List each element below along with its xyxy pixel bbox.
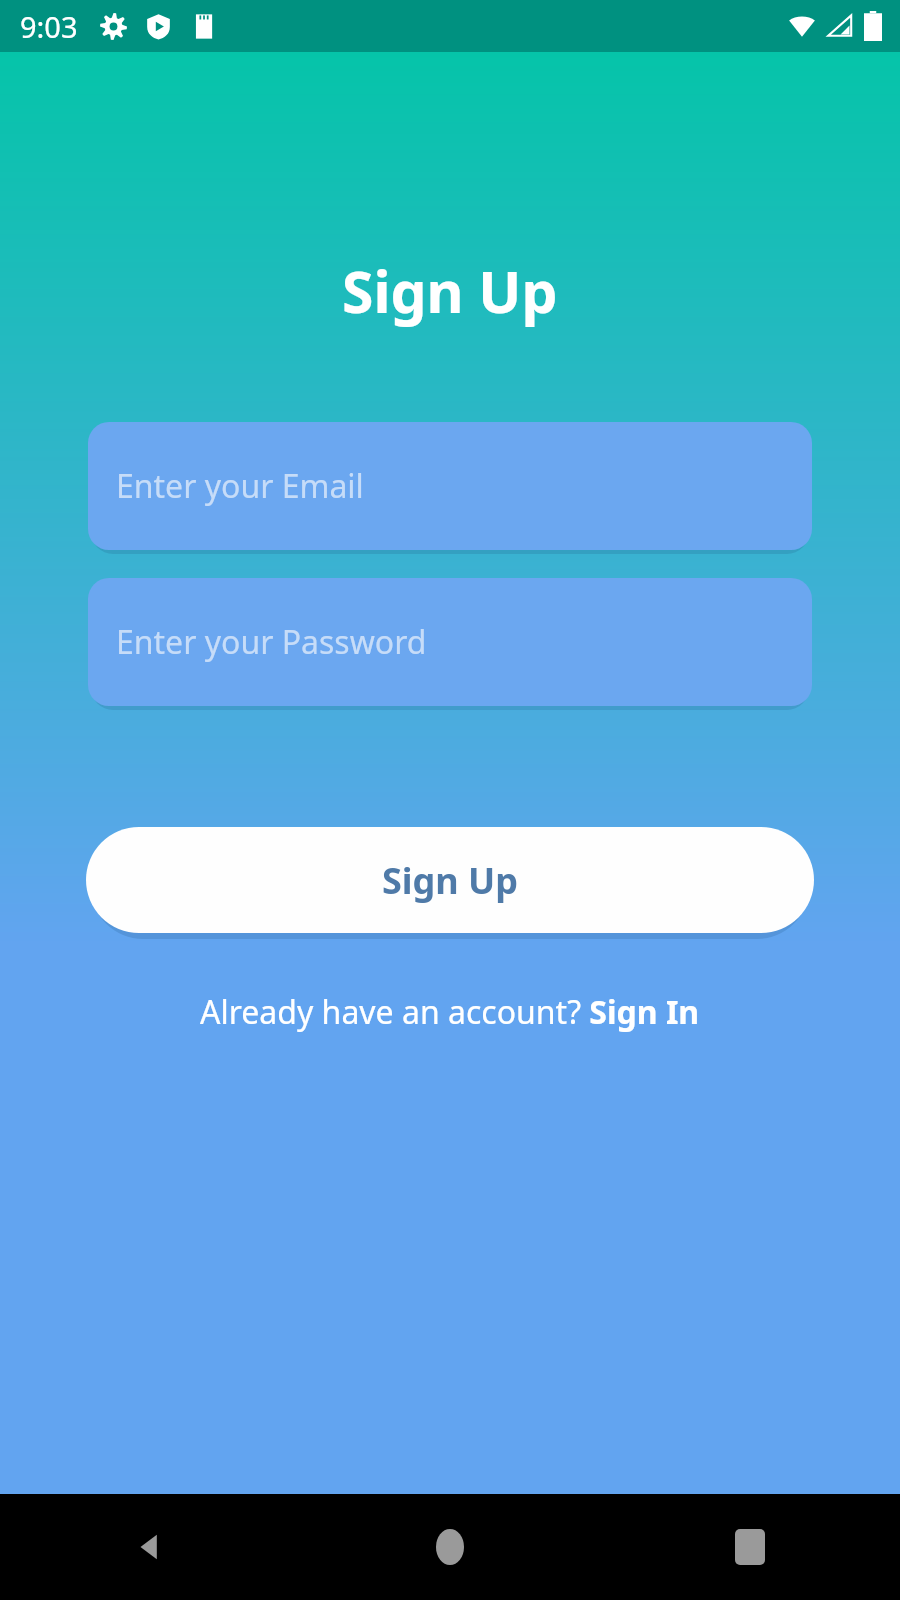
staticText: Enter your Email <box>116 464 364 508</box>
button[interactable]: Enter your Email <box>88 422 812 550</box>
staticText: Sign Up <box>342 252 558 330</box>
button[interactable]: Home <box>300 1494 600 1600</box>
staticText: Sign Up <box>382 856 519 905</box>
staticText: Already have an account? Sign In <box>200 990 700 1034</box>
button[interactable]: Enter your Password <box>88 578 812 706</box>
staticText: 9:03 <box>20 7 78 46</box>
button[interactable]: Sign Up <box>86 827 814 933</box>
button[interactable]: Recent apps <box>600 1494 900 1600</box>
button[interactable]: Back <box>0 1494 300 1600</box>
button[interactable]: Already have an account? Sign In <box>190 986 710 1038</box>
staticText: Enter your Password <box>116 620 427 664</box>
